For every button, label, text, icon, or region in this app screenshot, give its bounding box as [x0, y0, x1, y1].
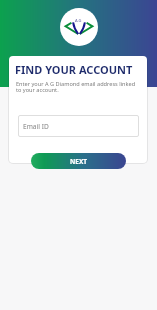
staticText: Enter your A G Diamond email address lin… — [16, 80, 139, 94]
button[interactable]: NEXT — [31, 153, 126, 169]
staticText: A.G — [75, 18, 82, 23]
button[interactable]: Email ID — [18, 115, 139, 137]
staticText: FIND YOUR ACCOUNT — [15, 62, 133, 77]
staticText: Email ID — [23, 122, 49, 131]
staticText: NEXT — [70, 157, 88, 166]
